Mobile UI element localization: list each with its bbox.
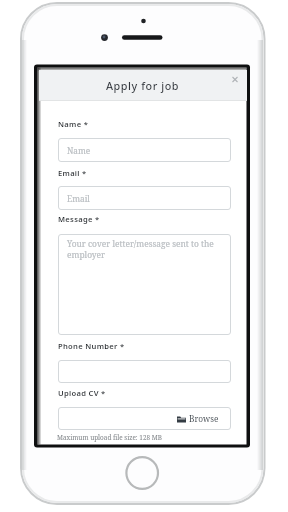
staticText: Name — [67, 145, 91, 156]
staticText: Your cover letter/message sent to the em… — [67, 238, 214, 260]
staticText: Email — [67, 193, 90, 204]
button[interactable] — [58, 360, 231, 383]
staticText: Phone Number * — [58, 341, 125, 351]
staticText: Upload CV * — [58, 388, 106, 398]
staticText: Name * — [58, 119, 89, 129]
button[interactable]: Browse — [58, 407, 231, 430]
button[interactable]: Your cover letter/message sent to the em… — [58, 234, 231, 335]
button[interactable]: Email — [58, 186, 231, 210]
staticText: Maximum upload file size: 128 MB — [57, 433, 162, 442]
staticText: Apply for job — [106, 78, 180, 93]
staticText: Email * — [58, 168, 87, 178]
staticText: Message * — [58, 214, 100, 224]
button[interactable] — [228, 72, 242, 86]
button[interactable]: Name — [58, 138, 231, 162]
staticText: Browse — [189, 413, 219, 424]
